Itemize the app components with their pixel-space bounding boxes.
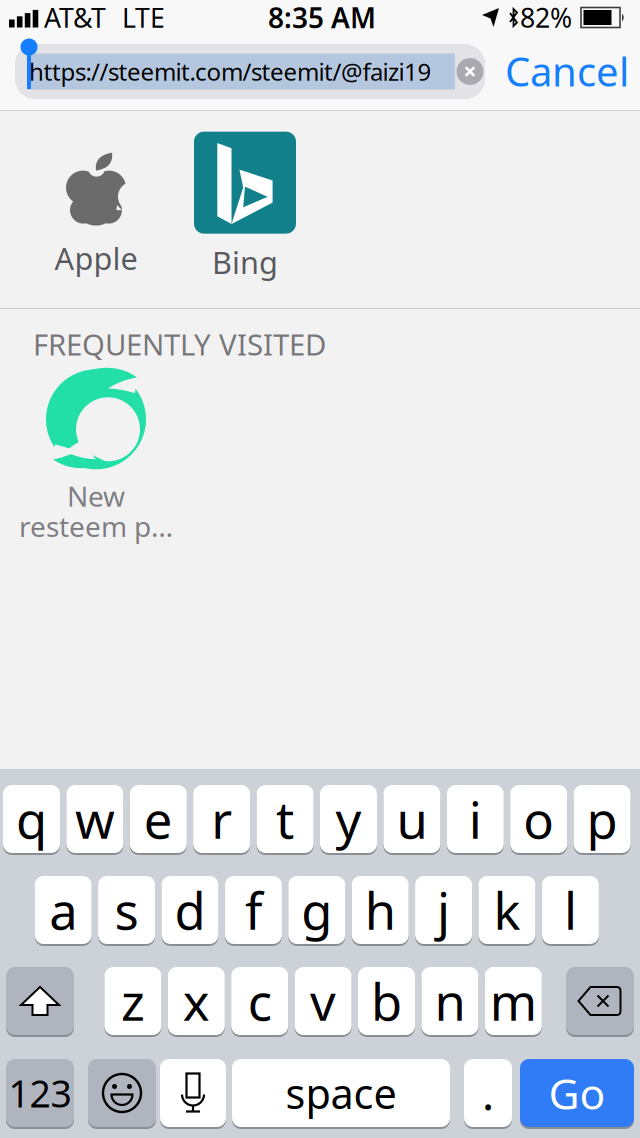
button[interactable]: e	[130, 784, 187, 854]
button[interactable]: h	[352, 875, 409, 945]
button[interactable]: m	[485, 966, 542, 1036]
button[interactable]: c	[231, 966, 288, 1036]
staticText: v	[310, 967, 336, 1035]
button[interactable]: Cancel	[505, 43, 629, 98]
button[interactable]: Delete	[566, 966, 634, 1036]
button[interactable]: f	[225, 875, 282, 945]
button[interactable]: p	[574, 784, 631, 854]
staticText: c	[248, 967, 272, 1035]
staticText: k	[493, 876, 520, 944]
button[interactable]: Address	[15, 44, 485, 99]
staticText: z	[121, 967, 145, 1035]
staticText: space	[285, 1066, 396, 1120]
button[interactable]: v	[295, 966, 352, 1036]
staticText: m	[490, 967, 537, 1035]
button[interactable]: y	[320, 784, 377, 854]
staticText: s	[115, 876, 139, 944]
button[interactable]: i	[447, 784, 504, 854]
staticText: New	[67, 477, 125, 514]
staticText: w	[75, 785, 115, 853]
staticText: r	[211, 785, 232, 853]
button[interactable]: d	[161, 875, 218, 945]
button[interactable]: Dictate	[160, 1058, 226, 1128]
staticText: d	[174, 876, 205, 944]
button[interactable]: j	[415, 875, 472, 945]
staticText: u	[396, 785, 427, 853]
staticText: x	[183, 967, 210, 1035]
staticText: l	[564, 876, 577, 944]
staticText: .	[482, 1063, 494, 1123]
button[interactable]: k	[478, 875, 535, 945]
button[interactable]: space	[232, 1058, 450, 1128]
staticText: f	[245, 876, 262, 944]
button[interactable]: o	[510, 784, 567, 854]
staticText: resteem p…	[19, 507, 173, 545]
button[interactable]: Apple	[31, 140, 161, 290]
button[interactable]: .	[464, 1058, 512, 1128]
button[interactable]: x	[168, 966, 225, 1036]
button[interactable]: r	[193, 784, 250, 854]
staticText: a	[49, 876, 77, 944]
button[interactable]: b	[358, 966, 415, 1036]
button[interactable]: Emoji	[88, 1058, 156, 1128]
button[interactable]: Bing	[180, 132, 310, 282]
staticText: Cancel	[505, 44, 629, 97]
staticText: Go	[548, 1065, 605, 1121]
staticText: t	[276, 785, 294, 853]
staticText: 123	[8, 1068, 71, 1118]
staticText: g	[301, 876, 332, 944]
staticText: e	[144, 785, 173, 853]
button[interactable]: New resteem post	[11, 370, 181, 540]
button[interactable]: w	[66, 784, 123, 854]
staticText: n	[434, 967, 465, 1035]
button[interactable]: s	[98, 875, 155, 945]
button[interactable]: a	[35, 875, 92, 945]
staticText: h	[365, 876, 396, 944]
button[interactable]: Shift	[6, 966, 74, 1036]
staticText: b	[371, 967, 402, 1035]
staticText: y	[335, 785, 361, 853]
staticText: FREQUENTLY VISITED	[33, 324, 326, 363]
button[interactable]: g	[288, 875, 345, 945]
staticText: o	[523, 785, 554, 853]
button[interactable]: Clear text	[456, 58, 483, 85]
button[interactable]: l	[542, 875, 599, 945]
button[interactable]: q	[3, 784, 60, 854]
staticText: https://steemit.com/steemit/@faizi19	[29, 56, 431, 87]
staticText: Apple	[54, 238, 137, 278]
staticText: Bing	[212, 242, 278, 282]
button[interactable]: u	[383, 784, 440, 854]
button[interactable]: t	[257, 784, 314, 854]
button[interactable]: n	[421, 966, 478, 1036]
button[interactable]: Go	[520, 1058, 634, 1128]
staticText: i	[469, 785, 482, 853]
button[interactable]: 123	[6, 1058, 74, 1128]
staticText: 8:35 AM	[268, 0, 376, 36]
staticText: AT&T	[44, 0, 106, 35]
button[interactable]: z	[104, 966, 161, 1036]
staticText: 82%	[520, 0, 572, 35]
staticText: LTE	[122, 0, 165, 35]
staticText: q	[16, 785, 47, 853]
staticText: p	[587, 785, 618, 853]
staticText: j	[437, 876, 450, 944]
